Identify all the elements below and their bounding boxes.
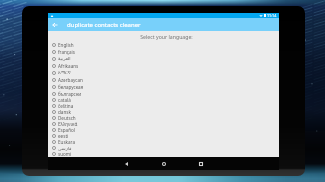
button[interactable]: suomi — [48, 151, 279, 157]
staticText: English — [58, 42, 74, 48]
button[interactable]: Back — [108, 157, 145, 170]
button[interactable]: አማርኛ — [48, 69, 279, 76]
staticText: čeština — [58, 103, 74, 109]
staticText: Select your language: — [54, 33, 279, 40]
button[interactable]: čeština — [48, 103, 279, 109]
button[interactable]: eesti — [48, 133, 279, 139]
staticText: dansk — [58, 109, 71, 115]
button[interactable]: français — [48, 48, 279, 55]
button[interactable]: Navigate up — [48, 18, 61, 31]
button[interactable]: Afrikaans — [48, 62, 279, 69]
staticText: duplicate contacts cleaner — [67, 21, 141, 29]
button[interactable]: беларуская — [48, 83, 279, 90]
staticText: Afrikaans — [58, 63, 79, 69]
staticText: suomi — [58, 151, 72, 157]
button[interactable]: Home — [145, 157, 182, 170]
staticText: Azərbaycan — [58, 77, 83, 83]
button[interactable]: Deutsch — [48, 115, 279, 121]
staticText: български — [58, 91, 82, 97]
button[interactable]: dansk — [48, 109, 279, 115]
button[interactable]: Euskara — [48, 139, 279, 145]
button[interactable]: فارسی — [48, 145, 279, 151]
staticText: català — [58, 97, 71, 103]
button[interactable]: English — [48, 41, 279, 48]
button[interactable]: العربية — [48, 55, 279, 62]
button[interactable]: Recent apps — [182, 157, 219, 170]
staticText: беларуская — [58, 84, 84, 90]
staticText: Deutsch — [58, 115, 76, 121]
button[interactable]: български — [48, 90, 279, 97]
button[interactable]: català — [48, 97, 279, 103]
staticText: አማርኛ — [58, 70, 71, 75]
button[interactable]: Ελληνικά — [48, 121, 279, 127]
staticText: eesti — [58, 133, 69, 139]
staticText: فارسی — [58, 146, 72, 151]
staticText: 11:14 — [267, 13, 277, 18]
staticText: العربية — [58, 56, 71, 61]
button[interactable]: Español — [48, 127, 279, 133]
staticText: Español — [58, 127, 75, 133]
button[interactable]: Azərbaycan — [48, 76, 279, 83]
staticText: Euskara — [58, 139, 76, 145]
staticText: français — [58, 49, 75, 55]
staticText: Ελληνικά — [58, 121, 78, 127]
